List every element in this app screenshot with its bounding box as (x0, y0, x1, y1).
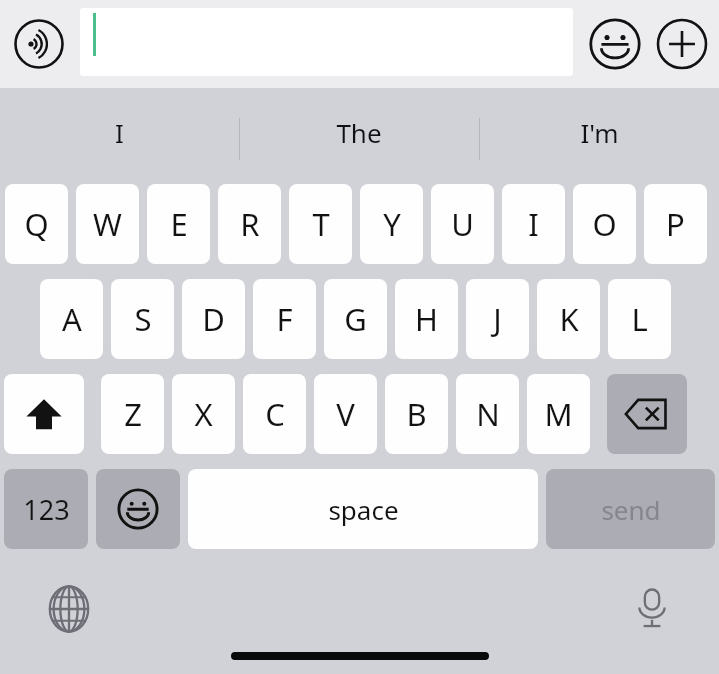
button[interactable]: W (76, 184, 139, 264)
button[interactable]: Z (101, 374, 164, 454)
button[interactable]: G (324, 279, 387, 359)
staticText: G (344, 298, 367, 340)
button[interactable]: D (182, 279, 245, 359)
button[interactable]: L (608, 279, 671, 359)
button[interactable]: Shift (4, 374, 84, 454)
button[interactable]: U (431, 184, 494, 264)
staticText: T (312, 203, 330, 245)
button[interactable]: Y (360, 184, 423, 264)
staticText: O (592, 203, 617, 245)
staticText: J (493, 298, 502, 340)
button[interactable]: Add attachment (655, 17, 709, 71)
staticText: V (336, 393, 355, 435)
button[interactable]: F (253, 279, 316, 359)
button[interactable]: Send audio message (13, 18, 65, 70)
staticText: A (62, 298, 82, 340)
button[interactable]: J (466, 279, 529, 359)
button[interactable]: R (218, 184, 281, 264)
button[interactable]: K (537, 279, 600, 359)
button[interactable]: The (239, 88, 479, 176)
button[interactable]: Emoji keyboard (96, 469, 180, 549)
button[interactable]: O (573, 184, 636, 264)
button[interactable]: I (0, 88, 239, 176)
staticText: 123 (23, 491, 70, 528)
staticText: E (170, 203, 188, 245)
staticText: Z (124, 393, 142, 435)
button[interactable]: M (527, 374, 590, 454)
button[interactable]: H (395, 279, 458, 359)
button[interactable]: N (456, 374, 519, 454)
button[interactable]: A (40, 279, 103, 359)
staticText: C (265, 393, 285, 435)
button[interactable]: Dictate (622, 578, 682, 638)
button[interactable]: B (385, 374, 448, 454)
staticText: R (240, 203, 260, 245)
button[interactable]: Stickers (588, 17, 642, 71)
button[interactable]: S (111, 279, 174, 359)
staticText: Q (24, 203, 49, 245)
button[interactable]: T (289, 184, 352, 264)
button[interactable]: send (546, 469, 715, 549)
staticText: F (276, 298, 293, 340)
staticText: B (406, 393, 427, 435)
button[interactable]: I (502, 184, 565, 264)
button[interactable]: P (644, 184, 707, 264)
staticText: H (415, 298, 438, 340)
button[interactable]: Q (5, 184, 68, 264)
button[interactable]: E (147, 184, 210, 264)
staticText: M (544, 393, 573, 435)
staticText: L (631, 298, 648, 340)
staticText: I (528, 203, 539, 245)
button[interactable]: X (172, 374, 235, 454)
staticText: K (559, 298, 579, 340)
staticText: S (134, 298, 152, 340)
staticText: I (115, 115, 124, 150)
button[interactable]: space (188, 469, 538, 549)
button[interactable]: Backspace (607, 374, 687, 454)
staticText: Y (383, 203, 401, 245)
staticText: send (601, 492, 661, 527)
button[interactable]: 123 (4, 469, 88, 549)
button[interactable]: V (314, 374, 377, 454)
button[interactable] (80, 8, 573, 76)
staticText: I'm (580, 115, 619, 150)
staticText: The (336, 115, 382, 150)
button[interactable]: C (243, 374, 306, 454)
staticText: W (93, 203, 122, 245)
staticText: space (328, 492, 399, 527)
staticText: X (194, 393, 213, 435)
staticText: N (476, 393, 500, 435)
staticText: D (202, 298, 225, 340)
staticText: U (451, 203, 474, 245)
button[interactable]: I'm (479, 88, 719, 176)
staticText: P (666, 203, 685, 245)
button[interactable]: Change keyboard language (38, 578, 100, 640)
